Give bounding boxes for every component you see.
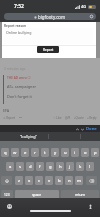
button[interactable]: Done [86,126,97,132]
button[interactable]: u [61,148,69,157]
staticText: 4G [81,4,87,9]
staticText: h [59,164,62,170]
button[interactable]: v [45,176,53,185]
button[interactable]: x [25,176,33,185]
button[interactable]: Emoji keyboard [7,204,12,209]
staticText: 123 [4,193,10,197]
button[interactable]: Online bullying [4,28,93,44]
staticText: m [77,178,81,184]
button[interactable]: l [86,162,94,171]
staticText: u [64,150,67,156]
staticText: f [39,164,41,170]
button[interactable]: ⚠ Report [3,116,16,120]
button[interactable]: d [26,162,34,171]
staticText: bigfooty.com [38,14,66,20]
button[interactable]: g [46,162,54,171]
staticText: 3 minutes ago [4,67,26,71]
button[interactable]: bigfooty.com [4,13,96,20]
button[interactable]: a [6,162,14,171]
button[interactable]: +Quote [74,116,84,120]
button[interactable]: b [55,176,63,185]
button[interactable]: Previous field [75,127,80,132]
staticText: Online bullying [6,30,32,35]
staticText: r [34,150,36,156]
staticText: t [44,150,46,156]
button[interactable]: w [11,148,19,157]
button[interactable]: f [36,162,44,171]
staticText: q [4,150,7,156]
button[interactable]: Shift [1,176,12,185]
button[interactable]: o [81,148,89,157]
staticText: j [69,164,71,170]
button[interactable]: t [41,148,49,157]
staticText: d [29,164,32,170]
button[interactable]: p [91,148,99,157]
staticText: Don't forget it [7,94,32,99]
staticText: a [9,164,12,170]
button[interactable]: “bullying” [20,134,37,139]
button[interactable]: s [16,162,24,171]
button[interactable]: @/R [65,116,71,120]
staticText: x [28,178,31,184]
button[interactable]: Report [37,46,59,53]
button[interactable]: ↩Reply [87,116,97,120]
staticText: y [54,150,57,156]
staticText: w [13,150,17,156]
staticText: k [79,164,82,170]
button[interactable]: r [31,148,39,157]
staticText: Report [43,48,54,52]
button[interactable]: j [66,162,74,171]
staticText: space [32,192,42,197]
staticText: Report reason [4,24,27,28]
staticText: A5+ campaigner [7,84,37,89]
staticText: o [84,150,87,156]
staticText: return [75,192,86,197]
staticText: v [48,178,51,184]
staticText: 7:52 [14,3,24,10]
staticText: i [74,150,76,156]
button[interactable]: Reload page [89,14,94,19]
staticText: s [19,164,22,170]
staticText: b [58,178,61,184]
staticText: z [18,178,20,184]
staticText: n [68,178,71,184]
button[interactable]: c [35,176,43,185]
button[interactable]: k [76,162,84,171]
button[interactable]: m [75,176,83,185]
staticText: THE AD worx ⓘ [7,76,31,80]
button[interactable]: y [51,148,59,157]
button[interactable]: q [1,148,9,157]
staticText: c [38,178,41,184]
button[interactable]: e [21,148,29,157]
button[interactable]: 123 [1,190,13,199]
button[interactable]: Backspace [86,176,97,185]
staticText: p [94,150,97,156]
button[interactable]: Next field [80,127,85,132]
button[interactable]: h [56,162,64,171]
button[interactable]: Dictation [88,204,93,209]
button[interactable]: i [71,148,79,157]
button[interactable]: z [15,176,23,185]
staticText: e [24,150,27,156]
staticText: EFA [3,108,10,113]
button[interactable]: space [15,190,59,199]
button[interactable]: return [61,190,99,199]
button[interactable]: n [65,176,73,185]
button[interactable]: ••• [19,116,23,120]
staticText: g [49,164,52,170]
button[interactable]: ♡ Like [53,116,62,120]
staticText: l [89,164,91,170]
